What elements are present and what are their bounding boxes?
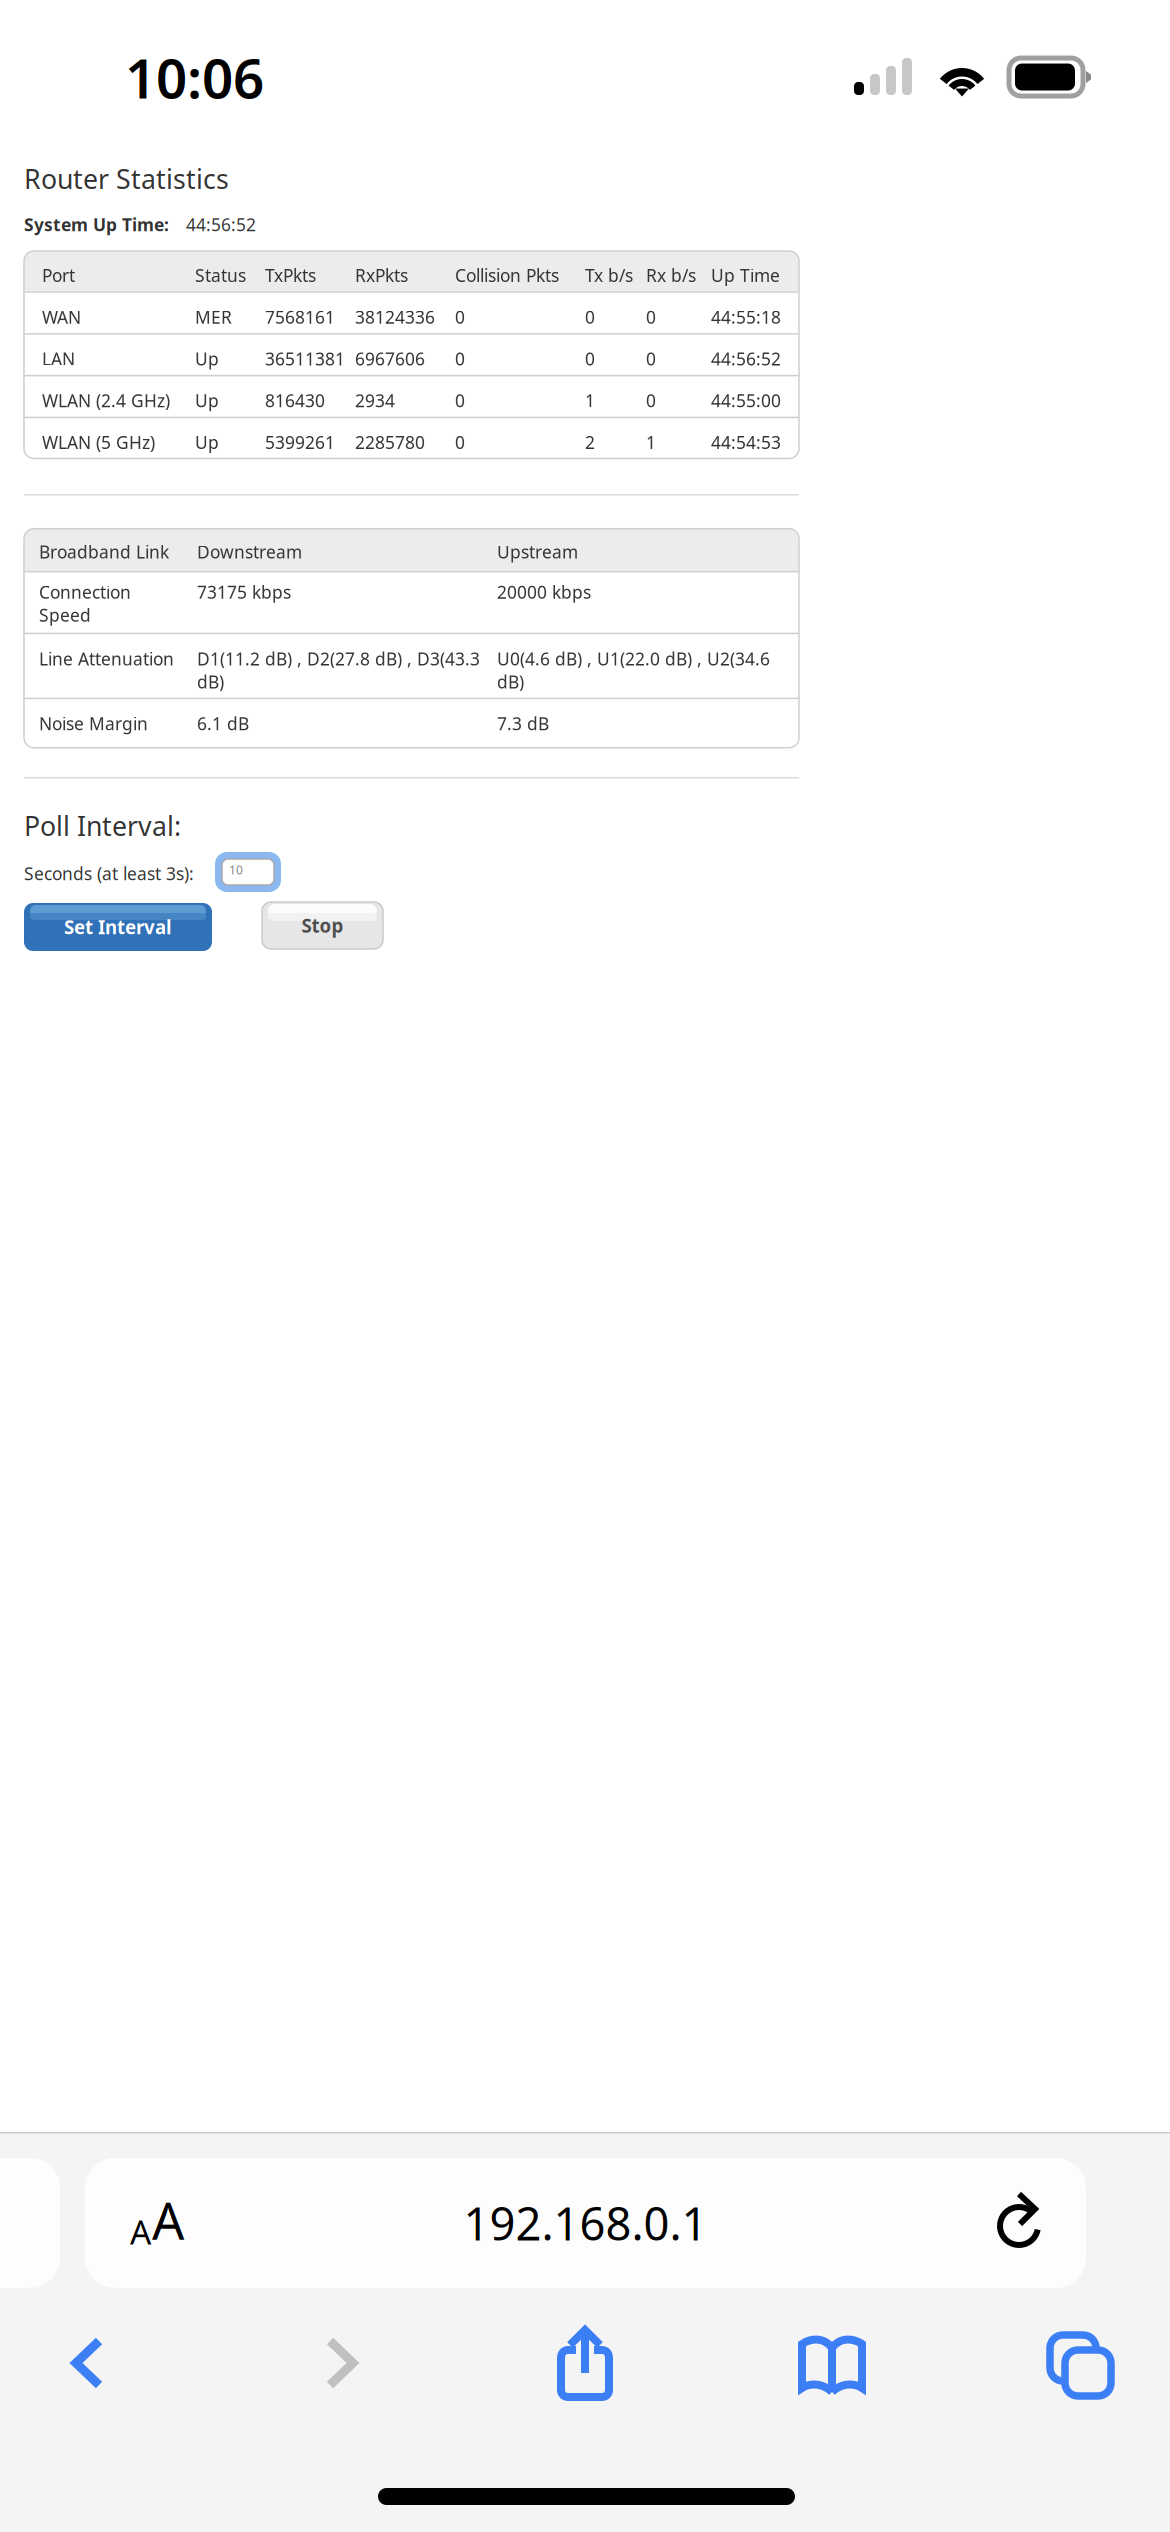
staticText: 6967606 — [355, 347, 425, 370]
staticText: MER — [195, 305, 232, 328]
staticText: 1 — [646, 431, 656, 454]
staticText: 1 — [585, 389, 595, 412]
staticText: 0 — [455, 305, 465, 328]
staticText: 44:55:00 — [711, 389, 781, 412]
staticText: 7.3 dB — [497, 712, 549, 735]
staticText: Rx b/s — [646, 264, 696, 287]
button[interactable]: Bookmarks — [768, 2304, 896, 2422]
staticText: 44:55:18 — [711, 305, 781, 328]
staticText: Set Interval — [64, 915, 172, 939]
staticText: Upstream — [497, 540, 578, 563]
staticText: 2 — [585, 431, 595, 454]
staticText: 0 — [455, 347, 465, 370]
staticText: A — [130, 2209, 151, 2254]
staticText: LAN — [42, 347, 75, 370]
button[interactable]: Forward — [279, 2304, 407, 2422]
staticText: Router Statistics — [24, 161, 229, 196]
staticText: Up — [195, 389, 219, 412]
staticText: 5399261 — [265, 431, 335, 454]
staticText: Poll Interval: — [24, 808, 181, 843]
button[interactable]: Set Interval — [24, 903, 212, 951]
staticText: Broadband Link — [39, 540, 169, 563]
staticText: 6.1 dB — [197, 712, 249, 735]
staticText: Noise Margin — [39, 712, 148, 735]
staticText: Up — [195, 347, 219, 370]
staticText: 73175 kbps — [197, 580, 291, 603]
staticText: Seconds (at least 3s): — [24, 862, 194, 885]
staticText: Connection Speed — [39, 580, 131, 626]
staticText: Collision Pkts — [455, 264, 559, 287]
staticText: WAN — [42, 305, 81, 328]
staticText: Line Attenuation — [39, 647, 174, 670]
staticText: 10 — [229, 862, 243, 878]
staticText: U0(4.6 dB) , U1(22.0 dB) , U2(34.6 dB) — [497, 647, 770, 693]
staticText: WLAN (2.4 GHz) — [42, 389, 170, 412]
staticText: Up — [195, 431, 219, 454]
staticText: RxPkts — [355, 264, 408, 287]
staticText: 2934 — [355, 389, 395, 412]
staticText: 0 — [646, 389, 656, 412]
staticText: 0 — [455, 389, 465, 412]
staticText: Downstream — [197, 540, 302, 563]
staticText: Stop — [301, 913, 343, 938]
staticText: 0 — [646, 347, 656, 370]
staticText: 38124336 — [355, 305, 435, 328]
button[interactable]: Tabs — [1016, 2304, 1144, 2422]
staticText: 44:54:53 — [711, 431, 781, 454]
staticText: D1(11.2 dB) , D2(27.8 dB) , D3(43.3 dB) — [197, 647, 480, 693]
staticText: WLAN (5 GHz) — [42, 431, 155, 454]
button[interactable]: Reload — [961, 2158, 1071, 2288]
staticText: 10:06 — [125, 41, 264, 114]
button[interactable]: Share — [521, 2304, 649, 2422]
staticText: 44:56:52 — [711, 347, 781, 370]
button[interactable]: Page settings — [102, 2155, 212, 2285]
staticText: Port — [42, 264, 75, 287]
staticText: 0 — [455, 431, 465, 454]
button[interactable]: Stop — [262, 902, 383, 949]
staticText: 0 — [585, 347, 595, 370]
staticText: 192.168.0.1 — [463, 2193, 707, 2253]
staticText: Tx b/s — [585, 264, 633, 287]
staticText: 0 — [585, 305, 595, 328]
button[interactable]: Back — [22, 2304, 150, 2422]
staticText: 36511381 — [265, 347, 345, 370]
staticText: A — [152, 2186, 184, 2254]
staticText: 20000 kbps — [497, 580, 591, 603]
staticText: 816430 — [265, 389, 325, 412]
staticText: 44:56:52 — [186, 213, 256, 236]
staticText: TxPkts — [265, 264, 316, 287]
staticText: 7568161 — [265, 305, 335, 328]
staticText: System Up Time: — [24, 213, 169, 236]
staticText: 0 — [646, 305, 656, 328]
staticText: Up Time — [711, 264, 780, 287]
staticText: 2285780 — [355, 431, 425, 454]
staticText: Status — [195, 264, 246, 287]
